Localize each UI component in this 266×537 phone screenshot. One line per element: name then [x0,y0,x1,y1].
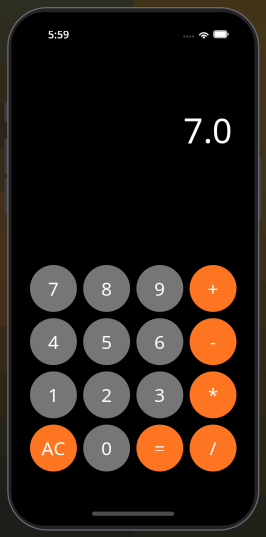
button[interactable]: - [190,318,236,365]
button[interactable]: = [136,425,183,471]
staticText: 8 [101,276,112,301]
staticText: 6 [154,329,165,354]
staticText: 7.0 [183,107,232,153]
button[interactable]: * [190,371,236,418]
staticText: = [154,436,165,460]
staticText: 4 [48,329,59,354]
staticText: 0 [101,436,112,460]
staticText: 5 [101,329,112,354]
button[interactable]: 9 [136,265,183,312]
button[interactable]: 7 [30,265,77,312]
staticText: / [210,436,217,460]
button[interactable]: 6 [136,318,183,365]
staticText: 5:59 [48,27,69,41]
button[interactable]: 8 [83,265,130,312]
button[interactable]: 1 [30,371,77,418]
staticText: 9 [154,276,165,301]
button[interactable]: 4 [30,318,77,365]
staticText: 3 [154,382,165,407]
staticText: 7 [48,276,59,301]
button[interactable]: 0 [83,425,130,471]
button[interactable]: / [190,425,236,471]
button[interactable]: 5 [83,318,130,365]
staticText: * [208,382,218,407]
staticText: 1 [48,382,59,407]
staticText: - [210,329,216,354]
button[interactable]: + [190,265,236,312]
button[interactable]: 3 [136,371,183,418]
button[interactable]: 2 [83,371,130,418]
staticText: + [208,276,219,301]
staticText: 2 [101,382,112,407]
button[interactable]: AC [30,425,77,471]
staticText: AC [41,436,65,460]
